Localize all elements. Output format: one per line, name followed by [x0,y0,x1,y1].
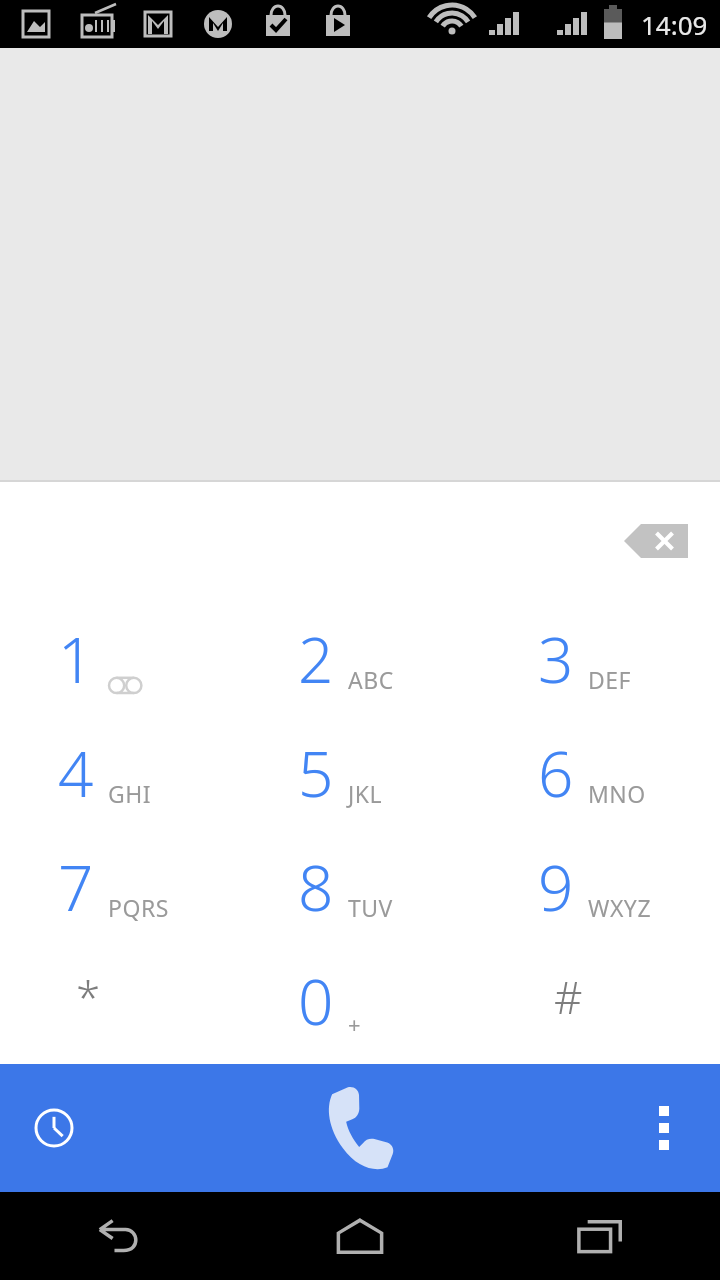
staticText: 5 [298,731,334,815]
button[interactable]: # [480,942,720,1056]
staticText: GHI [108,778,152,809]
staticText: * [76,967,101,1027]
staticText: 8 [298,845,334,929]
staticText: 7 [58,845,94,929]
button[interactable]: 2 [240,600,480,714]
staticText: TUV [348,892,393,923]
button[interactable]: * [0,942,240,1056]
button[interactable]: 6 [480,714,720,828]
button[interactable]: Backspace [610,503,702,579]
staticText: 14:09 [641,7,708,42]
button[interactable]: Call [300,1068,420,1188]
staticText: DEF [588,664,632,695]
staticText: # [554,967,583,1027]
staticText: ABC [348,664,394,695]
button[interactable]: 5 [240,714,480,828]
staticText: PQRS [108,892,169,923]
staticText: 9 [538,845,574,929]
button[interactable]: 7 [0,828,240,942]
button[interactable]: Home [240,1192,480,1280]
button[interactable]: 9 [480,828,720,942]
button[interactable]: More options [622,1086,706,1170]
staticText: MNO [588,778,646,809]
button[interactable]: 8 [240,828,480,942]
button[interactable]: Recent apps [480,1192,720,1280]
button[interactable]: 0 [240,942,480,1056]
staticText: 6 [538,731,574,815]
staticText: JKL [348,778,383,809]
button[interactable]: 3 [480,600,720,714]
staticText: 1 [58,617,94,701]
staticText: 0 [298,959,334,1043]
staticText: 4 [58,731,94,815]
button[interactable]: Call history [12,1086,96,1170]
button[interactable]: Back [0,1192,240,1280]
button[interactable]: 4 [0,714,240,828]
staticText: 3 [538,617,574,701]
button[interactable]: 1 [0,600,240,714]
staticText: WXYZ [588,892,652,923]
staticText: 2 [298,617,334,701]
staticText: + [348,1009,361,1039]
